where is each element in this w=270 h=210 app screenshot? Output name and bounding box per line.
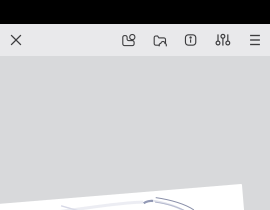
button[interactable]: Save to Files	[145, 24, 175, 56]
button[interactable]: Info	[176, 24, 206, 56]
button[interactable]: Adjust	[208, 24, 238, 56]
button[interactable]: Close	[0, 24, 33, 56]
button[interactable]: More	[240, 24, 270, 56]
button[interactable]: Markup	[113, 24, 143, 56]
